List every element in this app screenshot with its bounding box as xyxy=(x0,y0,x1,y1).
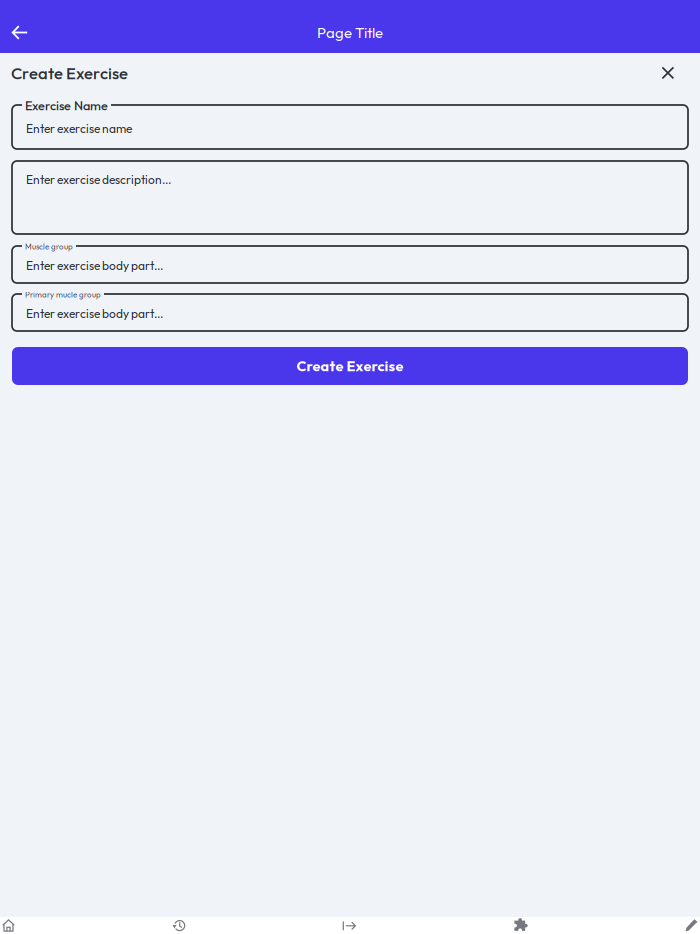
staticText: Exercise Name xyxy=(25,97,108,113)
button[interactable]: Edit xyxy=(685,919,698,932)
button[interactable]: Extensions xyxy=(514,918,528,932)
button[interactable]: Create Exercise xyxy=(12,347,688,385)
button[interactable]: Close xyxy=(653,58,683,88)
staticText: Page Title xyxy=(317,23,383,42)
staticText: Enter exercise body part... xyxy=(26,306,163,321)
staticText: Primary mucle group xyxy=(25,289,101,300)
button[interactable]: Sign out xyxy=(342,919,356,932)
staticText: Muscle group xyxy=(25,241,73,252)
button[interactable]: History xyxy=(172,919,185,932)
staticText: Enter exercise description... xyxy=(26,172,171,187)
staticText: Enter exercise name xyxy=(26,121,132,136)
button[interactable]: Home xyxy=(2,919,15,932)
button[interactable]: Back xyxy=(0,12,40,52)
staticText: Create Exercise xyxy=(11,62,128,83)
staticText: Enter exercise body part... xyxy=(26,258,163,273)
staticText: Create Exercise xyxy=(296,357,403,375)
